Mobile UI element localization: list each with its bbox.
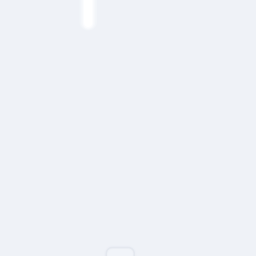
button[interactable]: Card xyxy=(107,248,135,256)
